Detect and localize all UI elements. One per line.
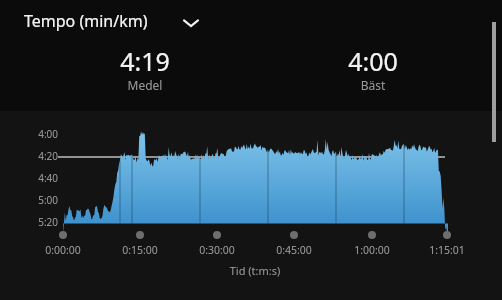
staticText: 1:00:00 — [341, 243, 403, 259]
button[interactable]: 4:00 — [313, 44, 433, 100]
staticText: 4:00 — [26, 127, 58, 143]
staticText: 5:20 — [26, 215, 58, 231]
button[interactable]: Tempo (min/km) — [20, 5, 210, 37]
staticText: Bäst — [313, 77, 433, 95]
button[interactable]: 4:19 — [85, 44, 205, 100]
staticText: 4:40 — [26, 171, 58, 187]
staticText: Tempo (min/km) — [24, 10, 148, 32]
staticText: 0:30:00 — [186, 243, 248, 259]
staticText: 4:20 — [26, 149, 58, 165]
staticText: 5:00 — [26, 193, 58, 209]
staticText: 4:19 — [85, 44, 205, 74]
staticText: 0:00:00 — [32, 243, 94, 259]
staticText: Medel — [85, 77, 205, 95]
button[interactable]: Pace chart — [0, 111, 502, 300]
staticText: 0:15:00 — [109, 243, 171, 259]
staticText: Tid (t:m:s) — [195, 263, 315, 281]
staticText: 0:45:00 — [263, 243, 325, 259]
other: Change metric — [181, 16, 201, 30]
staticText: 1:15:01 — [416, 243, 478, 259]
staticText: 4:00 — [313, 44, 433, 74]
